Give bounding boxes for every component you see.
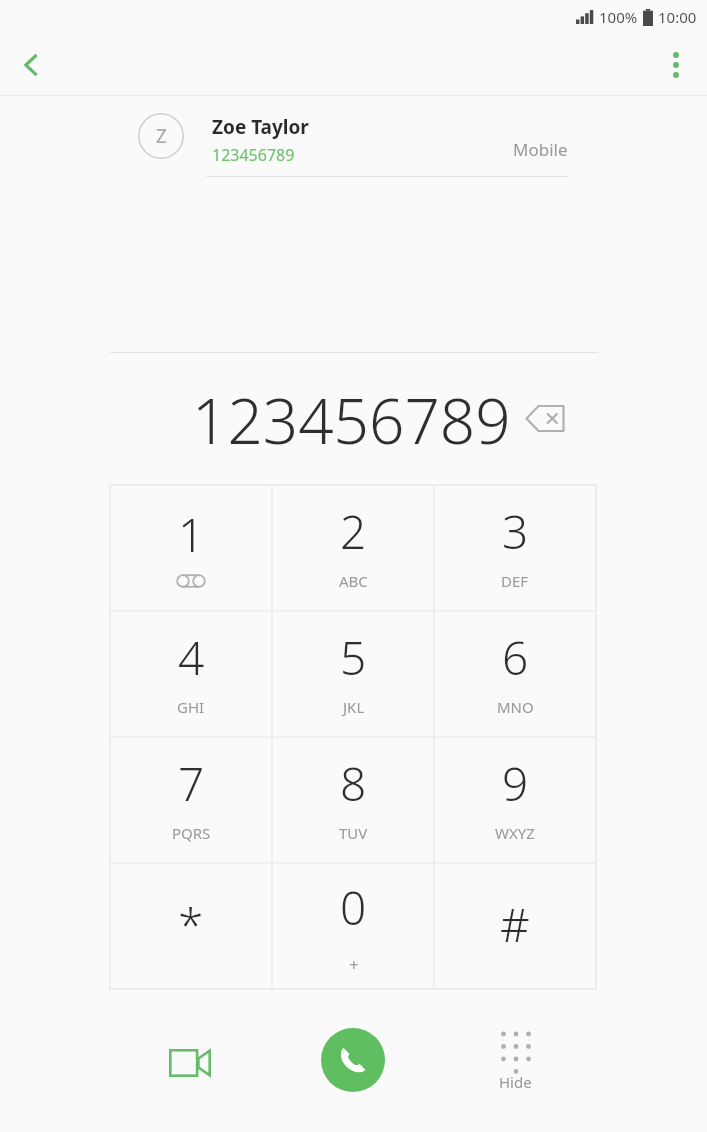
button[interactable]: 0: [272, 863, 434, 989]
staticText: Zoe Taylor: [212, 114, 309, 140]
staticText: +: [349, 953, 359, 976]
staticText: Hide: [499, 1072, 532, 1092]
staticText: ABC: [339, 571, 368, 591]
staticText: TUV: [339, 823, 368, 843]
button[interactable]: Video call: [148, 1028, 232, 1098]
staticText: 3: [502, 500, 529, 563]
button[interactable]: 8: [272, 737, 434, 863]
button[interactable]: 7: [110, 737, 272, 863]
button[interactable]: 3: [434, 485, 596, 611]
staticText: Z: [156, 123, 167, 149]
staticText: #: [500, 893, 530, 956]
button[interactable]: 5: [272, 611, 434, 737]
staticText: 7: [178, 752, 205, 815]
staticText: 4: [178, 626, 205, 689]
staticText: 100%: [599, 7, 638, 27]
staticText: 6: [502, 626, 529, 689]
button[interactable]: Call: [321, 1028, 385, 1092]
staticText: 5: [340, 626, 367, 689]
staticText: 123456789: [212, 144, 295, 166]
button[interactable]: *: [110, 863, 272, 989]
staticText: 0: [340, 876, 367, 939]
button[interactable]: 2: [272, 485, 434, 611]
staticText: MNO: [497, 697, 534, 717]
staticText: JKL: [343, 697, 365, 717]
button[interactable]: Backspace: [518, 391, 572, 445]
staticText: 2: [340, 500, 367, 563]
button[interactable]: #: [434, 863, 596, 989]
staticText: 123456789: [192, 378, 511, 458]
staticText: Mobile: [513, 138, 568, 161]
button[interactable]: Z: [0, 96, 707, 178]
button[interactable]: More options: [645, 34, 707, 96]
staticText: WXYZ: [495, 823, 535, 843]
staticText: GHI: [177, 697, 205, 717]
staticText: *: [178, 893, 204, 956]
button[interactable]: 9: [434, 737, 596, 863]
staticText: DEF: [501, 571, 529, 591]
button[interactable]: Back: [0, 34, 62, 96]
button[interactable]: 1: [110, 485, 272, 611]
button[interactable]: 6: [434, 611, 596, 737]
button[interactable]: Hide keypad: [473, 1022, 557, 1106]
staticText: PQRS: [172, 823, 211, 843]
staticText: 1: [178, 503, 205, 566]
button[interactable]: 4: [110, 611, 272, 737]
staticText: 10:00: [658, 7, 697, 27]
staticText: 8: [340, 752, 367, 815]
staticText: 9: [502, 752, 529, 815]
